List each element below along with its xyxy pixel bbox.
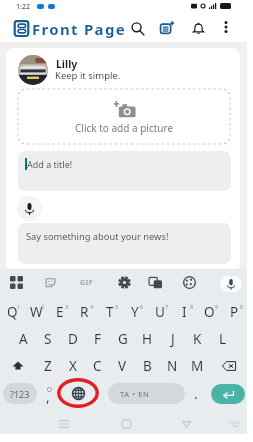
staticText: Click to add a picture (75, 121, 174, 135)
button[interactable]: More options (218, 19, 234, 35)
staticText: 1 (17, 303, 21, 310)
staticText: Q (7, 303, 18, 321)
button[interactable]: Add a title! (18, 151, 231, 191)
staticText: Keep it simple. (55, 69, 121, 82)
button[interactable]: Y (122, 299, 147, 325)
button[interactable]: D (60, 326, 85, 352)
staticText: X (69, 357, 77, 375)
button[interactable]: H (135, 326, 160, 352)
button[interactable]: C (85, 353, 110, 379)
button[interactable]: Shift (0, 353, 36, 379)
button[interactable]: J (160, 326, 185, 352)
button[interactable]: U (147, 299, 172, 325)
button[interactable]: . (188, 383, 204, 403)
button[interactable]: Apps (6, 272, 26, 292)
button[interactable]: Settings (114, 272, 134, 292)
button[interactable]: Q (0, 299, 24, 325)
button[interactable]: F (85, 326, 110, 352)
button[interactable]: Back (176, 414, 196, 434)
button[interactable]: G (110, 326, 135, 352)
staticText: Front Page (32, 19, 126, 39)
button[interactable]: A (11, 326, 35, 352)
staticText: Z (44, 357, 52, 375)
button[interactable]: K (185, 326, 210, 352)
button[interactable]: Themes (179, 272, 199, 292)
staticText: 7 (165, 303, 169, 310)
button[interactable]: Z (36, 353, 60, 379)
staticText: H (142, 330, 153, 348)
button[interactable]: E (48, 299, 72, 325)
button[interactable]: Home (116, 414, 136, 434)
staticText: V (118, 357, 127, 375)
button[interactable]: T (97, 299, 122, 325)
button[interactable]: V (110, 353, 135, 379)
staticText: 8 (190, 303, 194, 310)
staticText: K (193, 330, 202, 348)
staticText: Add a title! (27, 158, 73, 170)
staticText: 2 (41, 303, 45, 310)
staticText: 1:22 (16, 2, 30, 12)
button[interactable]: Voice input (17, 196, 42, 221)
staticText: J (171, 330, 175, 348)
button[interactable]: Say something about your news! (18, 223, 231, 264)
staticText: W (30, 303, 43, 321)
button[interactable]: P (222, 299, 247, 325)
staticText: 4 (90, 303, 94, 310)
button[interactable]: Voice typing (220, 276, 242, 292)
staticText: Lilly (56, 57, 78, 71)
button[interactable]: GIF (76, 272, 98, 294)
button[interactable]: X (60, 353, 85, 379)
button[interactable]: W (24, 299, 48, 325)
button[interactable]: O (197, 299, 222, 325)
button[interactable]: New post (158, 19, 176, 37)
staticText: 0 (240, 303, 244, 310)
button[interactable]: Notifications (189, 19, 207, 37)
staticText: M (191, 357, 204, 375)
button[interactable]: I (172, 299, 197, 325)
staticText: Say something about your news! (26, 230, 169, 243)
staticText: B (143, 357, 152, 375)
staticText: 9 (215, 303, 219, 310)
button[interactable]: Change language (57, 378, 99, 408)
button[interactable]: R (72, 299, 97, 325)
staticText: O (204, 303, 215, 321)
staticText: F (94, 330, 102, 348)
staticText: , (46, 388, 50, 406)
button[interactable]: Stickers (40, 272, 60, 292)
button[interactable]: Backspace (210, 353, 247, 379)
button[interactable]: S (35, 326, 60, 352)
staticText: I (182, 303, 187, 321)
staticText: A (19, 330, 28, 348)
button[interactable]: Translate (145, 272, 165, 292)
button[interactable]: Click to add a picture (18, 89, 230, 144)
staticText: 5 (115, 303, 119, 310)
button[interactable]: L (210, 326, 235, 352)
button[interactable]: TA • EN (108, 383, 185, 404)
staticText: L (219, 330, 227, 348)
staticText: G (118, 330, 128, 348)
staticText: S (44, 330, 52, 348)
button[interactable]: Recents (54, 414, 74, 434)
button[interactable]: M (185, 353, 210, 379)
staticText: . (194, 385, 198, 403)
staticText: C (93, 357, 102, 375)
button[interactable]: Enter (211, 384, 245, 404)
button[interactable]: Search (128, 19, 147, 38)
staticText: Y (131, 303, 139, 321)
button[interactable]: , (39, 383, 55, 403)
button[interactable]: Hide keyboard (225, 414, 245, 434)
button[interactable]: N (160, 353, 185, 379)
staticText: GIF (80, 278, 94, 288)
staticText: ?123 (10, 388, 30, 400)
staticText: N (167, 357, 178, 375)
staticText: R (80, 303, 89, 321)
staticText: E (56, 303, 64, 321)
staticText: D (68, 330, 78, 348)
staticText: 3 (65, 303, 69, 310)
staticText: 6 (140, 303, 144, 310)
staticText: T (106, 303, 114, 321)
button[interactable]: ?123 (3, 383, 37, 404)
staticText: U (155, 303, 165, 321)
staticText: TA • EN (120, 389, 150, 399)
button[interactable]: B (135, 353, 160, 379)
